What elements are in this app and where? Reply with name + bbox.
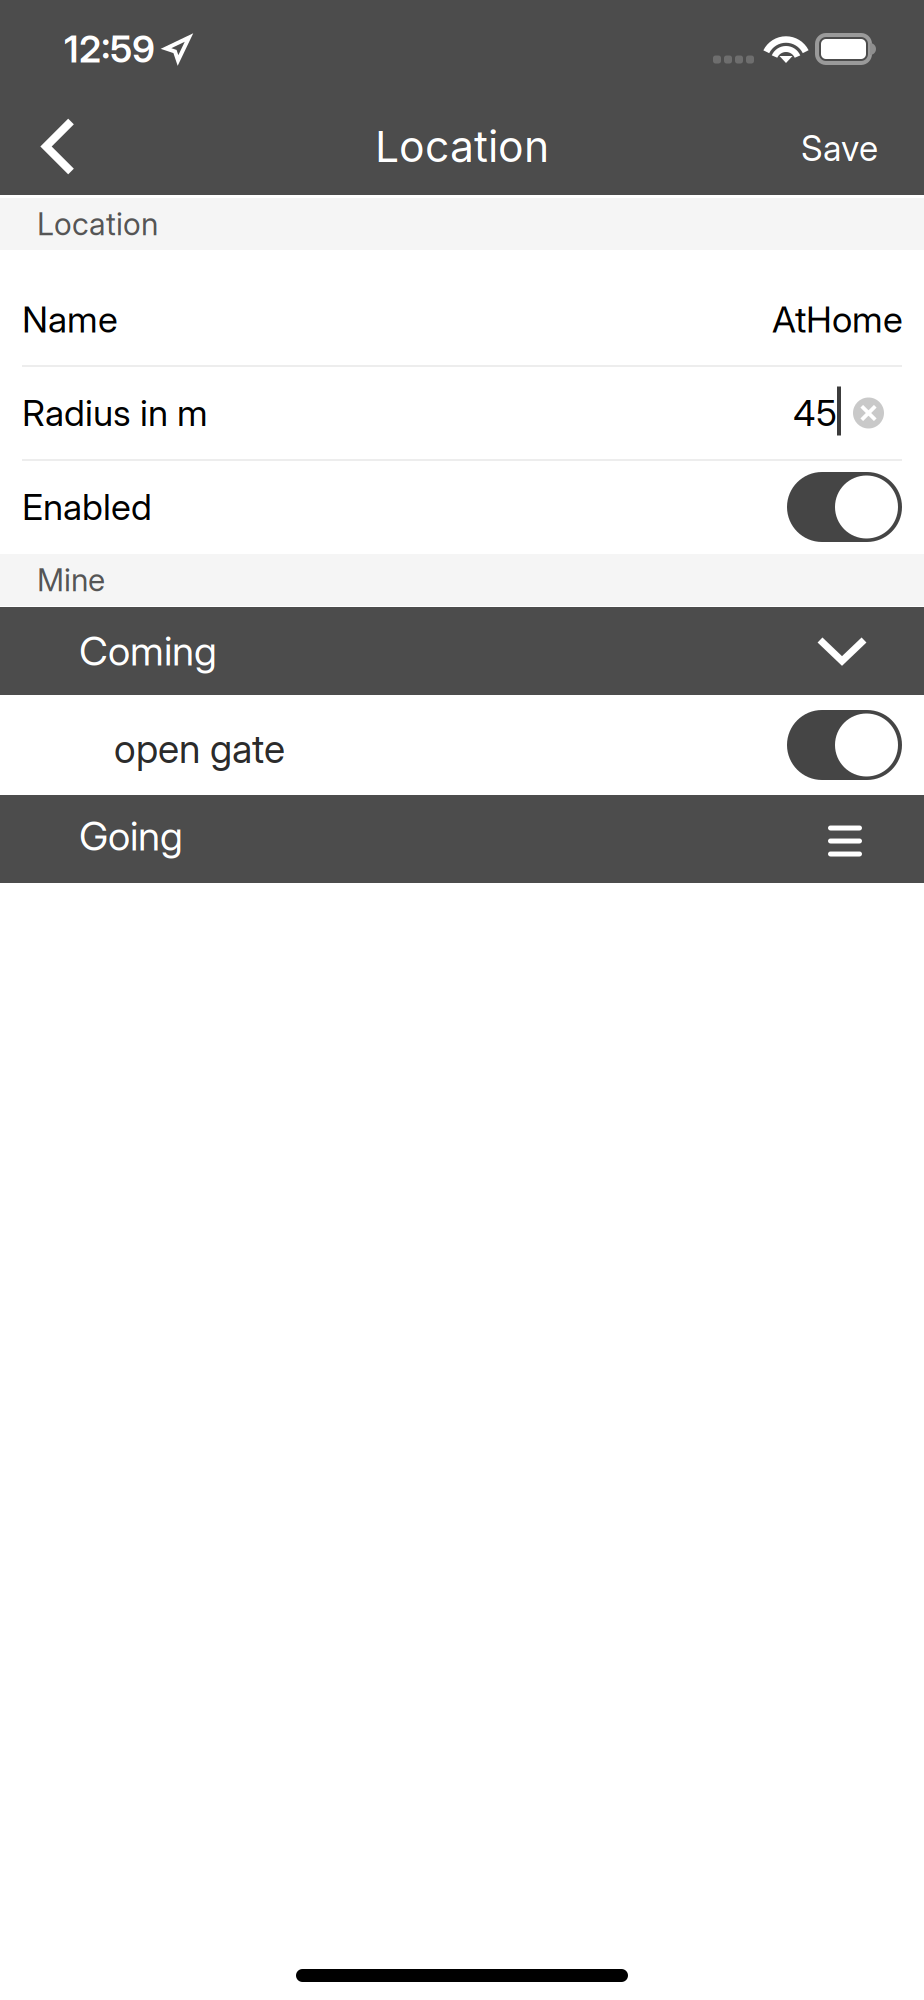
staticText: Radius in m: [22, 391, 208, 435]
staticText: Coming: [79, 627, 217, 675]
staticText: AtHome: [772, 298, 903, 341]
staticText: Name: [22, 298, 118, 341]
button[interactable]: Name: [0, 274, 924, 365]
button[interactable]: Enabled: [787, 472, 902, 542]
staticText: Mine: [37, 561, 105, 598]
button[interactable]: Coming: [0, 607, 924, 695]
staticText: 45: [793, 391, 837, 435]
button[interactable]: Clear text: [841, 397, 884, 428]
staticText: Location: [37, 205, 158, 242]
staticText: 12:59: [64, 26, 155, 72]
button[interactable]: Going: [0, 795, 924, 883]
staticText: Going: [79, 812, 183, 860]
button[interactable]: Back: [0, 98, 109, 195]
staticText: Save: [801, 127, 878, 169]
staticText: open gate: [114, 726, 285, 772]
button[interactable]: Save: [767, 98, 924, 195]
staticText: Location: [375, 121, 549, 172]
staticText: Enabled: [22, 485, 152, 529]
button[interactable]: open gate: [787, 710, 902, 780]
